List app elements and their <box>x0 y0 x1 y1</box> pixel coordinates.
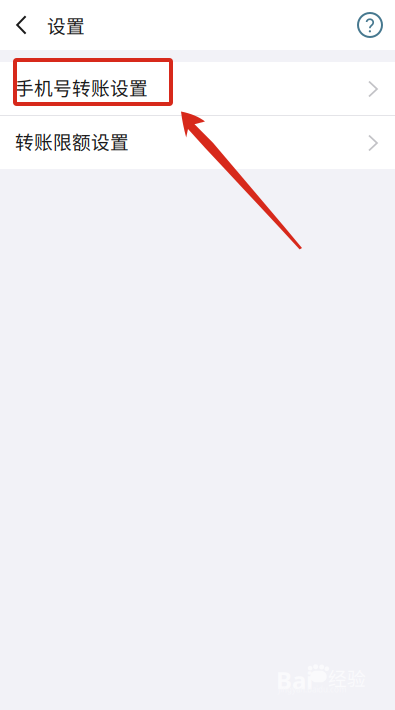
staticText: 转账限额设置 <box>15 127 129 154</box>
staticText: 手机号转账设置 <box>15 73 148 100</box>
staticText: Bai <box>276 664 313 696</box>
button[interactable]: 手机号转账设置 <box>0 62 395 115</box>
button[interactable]: Back <box>0 0 39 50</box>
staticText: 设置 <box>47 11 85 38</box>
button[interactable]: 转账限额设置 <box>0 116 395 169</box>
button[interactable]: Help <box>358 0 395 50</box>
